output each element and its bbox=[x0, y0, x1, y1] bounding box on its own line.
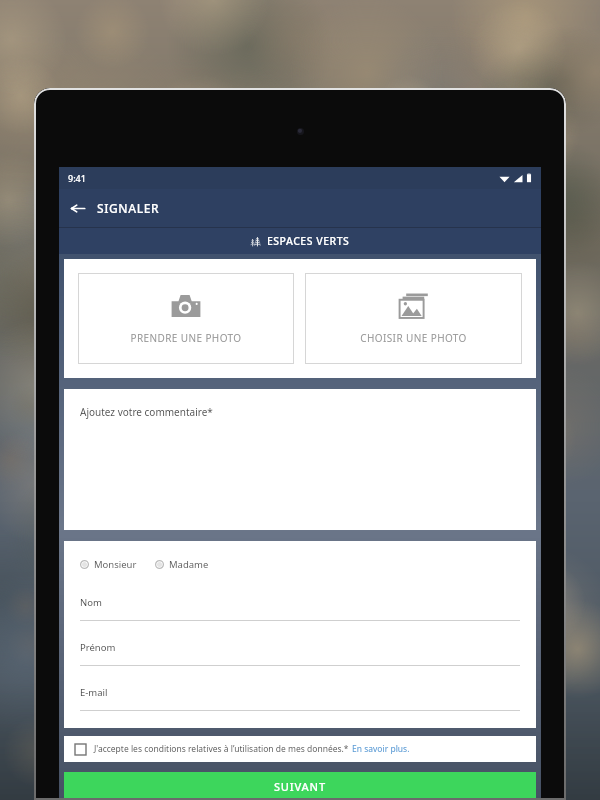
staticText: Madame bbox=[169, 558, 209, 571]
staticText: SUIVANT bbox=[274, 779, 326, 794]
button[interactable]: Back bbox=[59, 189, 97, 227]
button[interactable]: Choisir une photo bbox=[305, 273, 522, 364]
staticText: Ajoutez votre commentaire* bbox=[80, 405, 213, 419]
button[interactable]: Ajoutez votre commentaire* bbox=[64, 389, 536, 530]
staticText: PRENDRE UNE PHOTO bbox=[130, 331, 242, 345]
staticText: E-mail bbox=[80, 686, 108, 699]
staticText: Monsieur bbox=[94, 558, 137, 571]
button[interactable]: Prendre une photo bbox=[78, 273, 294, 364]
staticText: ESPACES VERTS bbox=[267, 234, 350, 248]
staticText: SIGNALER bbox=[97, 200, 160, 216]
staticText: 9:41 bbox=[68, 172, 86, 184]
button[interactable]: SUIVANT bbox=[64, 772, 536, 800]
staticText: CHOISIR UNE PHOTO bbox=[360, 331, 467, 345]
button[interactable]: J'accepte les conditions relatives à l’u… bbox=[64, 736, 536, 762]
staticText: Nom bbox=[80, 596, 102, 609]
staticText: En savoir plus. bbox=[352, 743, 410, 755]
staticText: J'accepte les conditions relatives à l’u… bbox=[94, 743, 349, 755]
button[interactable]: ESPACES VERTS bbox=[59, 228, 541, 254]
staticText: Prénom bbox=[80, 641, 116, 654]
